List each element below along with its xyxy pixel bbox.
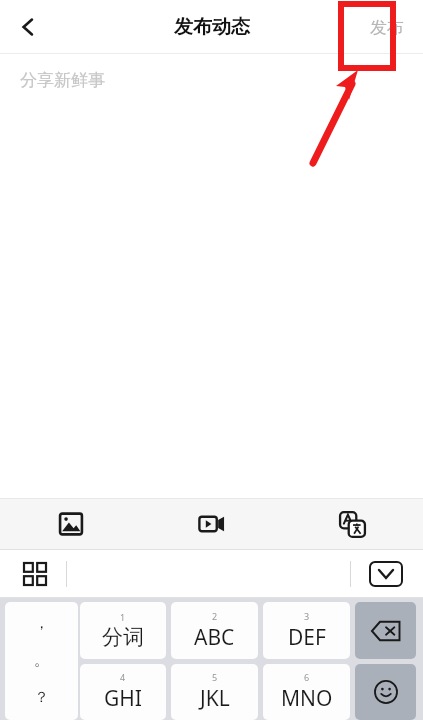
button[interactable]: 3	[263, 602, 350, 659]
button[interactable]: 1	[80, 602, 166, 659]
staticText: 2	[212, 610, 218, 622]
staticText: 分词	[102, 624, 144, 650]
button[interactable]: Hide keyboard	[369, 561, 403, 587]
button[interactable]: 4	[80, 664, 166, 720]
staticText: ？	[34, 688, 49, 707]
button[interactable]: 发布	[355, 0, 419, 54]
button[interactable]: 5	[171, 664, 258, 720]
button[interactable]: Back	[0, 0, 56, 54]
staticText: 。	[34, 651, 49, 670]
button[interactable]: Translate	[282, 498, 423, 550]
button[interactable]: Add video	[141, 498, 282, 550]
staticText: 3	[304, 610, 310, 622]
staticText: 分享新鲜事	[20, 70, 105, 91]
staticText: MNO	[281, 684, 333, 713]
staticText: ABC	[194, 623, 235, 652]
staticText: ，	[34, 614, 49, 633]
button[interactable]: 2	[171, 602, 258, 659]
button[interactable]: Keyboard layouts	[12, 552, 58, 596]
button[interactable]: Emoji	[355, 664, 416, 720]
staticText: 1	[120, 611, 126, 623]
button[interactable]: 6	[263, 664, 350, 720]
button[interactable]: ，	[5, 602, 78, 720]
staticText: 4	[120, 671, 126, 683]
staticText: JKL	[200, 684, 230, 713]
staticText: DEF	[288, 623, 326, 652]
button[interactable]: Add image	[0, 498, 141, 550]
staticText: GHI	[104, 684, 142, 713]
staticText: 发布	[370, 17, 404, 38]
button[interactable]: Backspace	[355, 602, 416, 659]
staticText: 6	[304, 671, 310, 683]
staticText: 5	[212, 671, 218, 683]
staticText: 发布动态	[174, 15, 250, 39]
